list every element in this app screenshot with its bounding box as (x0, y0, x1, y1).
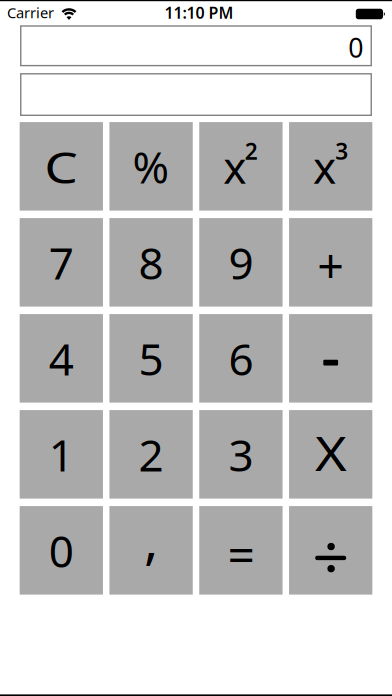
staticText: 5 (139, 329, 164, 387)
staticText: % (133, 137, 170, 195)
staticText: 6 (228, 329, 253, 387)
button[interactable]: 3 (199, 410, 282, 499)
staticText: Carrier (7, 3, 54, 22)
button[interactable]: = (199, 506, 282, 595)
staticText: C (47, 137, 75, 195)
staticText: 9 (228, 233, 253, 291)
button[interactable]: Subtract (289, 314, 372, 403)
staticText: 7 (49, 233, 74, 291)
button[interactable]: Square (199, 122, 282, 211)
staticText: 3 (228, 425, 253, 483)
staticText: 1 (49, 425, 74, 483)
staticText: X (317, 422, 344, 484)
button[interactable]: Cube (289, 122, 372, 211)
staticText: 0 (348, 30, 363, 65)
button[interactable]: 0 (20, 506, 103, 595)
button[interactable]: Clear (20, 122, 103, 211)
staticText: x (223, 137, 246, 196)
button[interactable]: % (109, 122, 193, 211)
staticText: 0 (49, 521, 74, 579)
staticText: x (313, 137, 336, 196)
staticText: 3 (335, 136, 348, 166)
button[interactable]: 6 (199, 314, 282, 403)
staticText: 11:10 PM (164, 2, 233, 23)
button[interactable]: 4 (20, 314, 103, 403)
button[interactable]: 5 (109, 314, 193, 403)
button[interactable]: Add (289, 218, 372, 307)
staticText: 2 (139, 425, 164, 483)
button[interactable]: 7 (20, 218, 103, 307)
button[interactable]: 1 (20, 410, 103, 499)
staticText: 8 (139, 233, 164, 291)
staticText: = (227, 521, 254, 585)
staticText: , (144, 503, 158, 574)
staticText: + (317, 234, 344, 296)
button[interactable]: 2 (109, 410, 193, 499)
staticText: 4 (49, 329, 74, 387)
staticText: 2 (245, 136, 258, 166)
button[interactable]: 8 (109, 218, 193, 307)
button[interactable]: Divide (289, 506, 372, 595)
button[interactable]: , (109, 506, 193, 595)
button[interactable]: 9 (199, 218, 282, 307)
button[interactable]: Multiply (289, 410, 372, 499)
